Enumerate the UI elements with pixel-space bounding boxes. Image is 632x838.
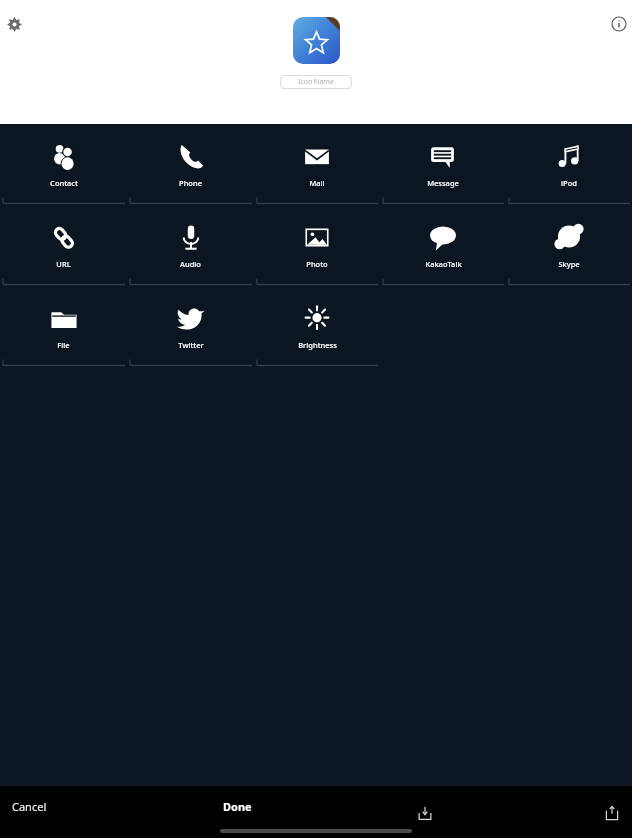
button[interactable]: KakaoTalk: [380, 205, 506, 286]
button[interactable]: Cancel: [12, 799, 47, 814]
button[interactable]: Share: [599, 800, 624, 825]
staticText: Audio: [180, 259, 201, 269]
button[interactable]: Phone: [127, 124, 254, 205]
button[interactable]: Settings: [3, 13, 25, 35]
button[interactable]: File: [0, 286, 127, 367]
staticText: File: [57, 340, 70, 350]
staticText: Message: [427, 178, 459, 188]
button[interactable]: Message: [380, 124, 506, 205]
button[interactable]: Contact: [0, 124, 127, 205]
staticText: Cancel: [12, 799, 47, 814]
staticText: Icon Name: [298, 77, 334, 87]
button[interactable]: Selected icon: [293, 17, 340, 64]
button[interactable]: Done: [223, 799, 252, 814]
button[interactable]: Photo: [254, 205, 380, 286]
staticText: iPod: [561, 178, 577, 188]
button[interactable]: Information: [608, 13, 630, 35]
staticText: KakaoTalk: [425, 259, 462, 269]
staticText: Brightness: [298, 340, 337, 350]
button[interactable]: URL: [0, 205, 127, 286]
button[interactable]: Mail: [254, 124, 380, 205]
button[interactable]: Audio: [127, 205, 254, 286]
staticText: Contact: [50, 178, 78, 188]
button[interactable]: Skype: [506, 205, 632, 286]
button[interactable]: Save: [412, 800, 437, 825]
button[interactable]: Icon Name: [280, 75, 352, 89]
staticText: Done: [223, 799, 252, 814]
button[interactable]: Twitter: [127, 286, 254, 367]
staticText: Photo: [306, 259, 328, 269]
staticText: Mail: [309, 178, 325, 188]
staticText: Skype: [558, 259, 580, 269]
button[interactable]: iPod: [506, 124, 632, 205]
staticText: Twitter: [178, 340, 204, 350]
staticText: Phone: [179, 178, 202, 188]
staticText: URL: [56, 259, 71, 269]
button[interactable]: Brightness: [254, 286, 380, 367]
